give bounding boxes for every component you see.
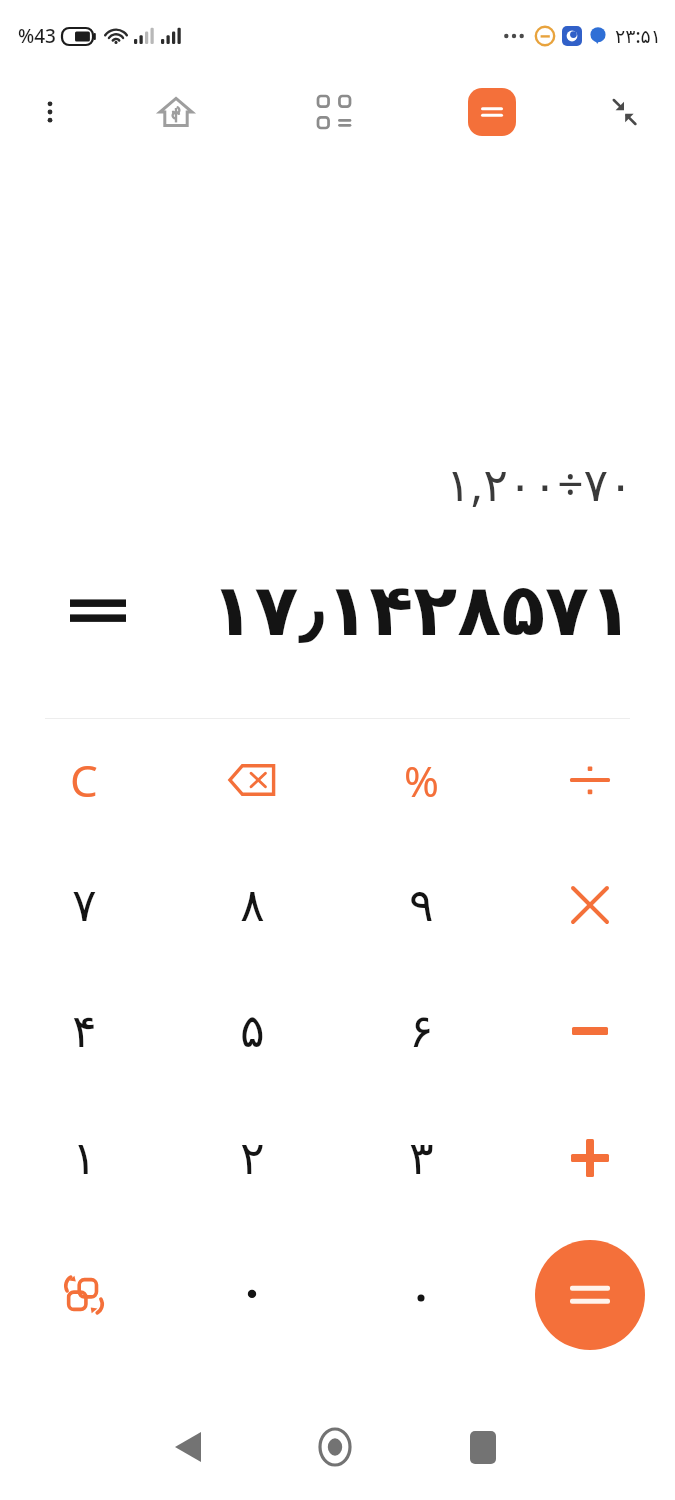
button[interactable]: Currency bbox=[148, 84, 204, 140]
staticText: ۱۷٫۱۴۲۸۵۷۱ bbox=[126, 568, 633, 652]
button[interactable]: Dot bbox=[361, 1239, 481, 1351]
button[interactable]: ۹ bbox=[361, 849, 481, 961]
button[interactable]: Back bbox=[148, 1407, 228, 1487]
button[interactable]: ۵ bbox=[192, 975, 312, 1087]
button[interactable]: ۴ bbox=[24, 975, 144, 1087]
button[interactable]: More options bbox=[22, 84, 78, 140]
button[interactable]: ۲ bbox=[192, 1102, 312, 1214]
button[interactable]: Decimal separator bbox=[192, 1239, 312, 1351]
staticText: ۹ bbox=[409, 878, 434, 932]
staticText: % bbox=[404, 752, 439, 809]
button[interactable]: Home bbox=[295, 1407, 375, 1487]
button[interactable]: Unit converter bbox=[306, 84, 362, 140]
staticText: %43 bbox=[18, 23, 56, 49]
button[interactable]: ۳ bbox=[361, 1102, 481, 1214]
button[interactable]: Calculator bbox=[468, 88, 516, 136]
button[interactable]: Clear bbox=[24, 724, 144, 836]
button[interactable]: Backspace bbox=[192, 724, 312, 836]
button[interactable]: ۸ bbox=[192, 849, 312, 961]
button[interactable]: Recent apps bbox=[443, 1407, 523, 1487]
button[interactable]: Divide bbox=[530, 724, 650, 836]
button[interactable]: Collapse bbox=[598, 86, 650, 138]
staticText: ۱ bbox=[72, 1131, 97, 1185]
staticText: ۲ bbox=[240, 1131, 265, 1185]
staticText: ۸ bbox=[240, 878, 265, 932]
staticText: C bbox=[70, 750, 98, 810]
staticText: ۴ bbox=[72, 1004, 97, 1058]
button[interactable]: ۱ bbox=[24, 1102, 144, 1214]
button[interactable]: ۶ bbox=[361, 975, 481, 1087]
staticText: ۱,۲۰۰÷۷۰ bbox=[0, 452, 633, 515]
button[interactable]: Multiply bbox=[530, 849, 650, 961]
button[interactable]: ۷ bbox=[24, 849, 144, 961]
button[interactable]: Percent bbox=[361, 724, 481, 836]
staticText: ۳ bbox=[409, 1131, 434, 1185]
button[interactable]: Minus bbox=[530, 975, 650, 1087]
staticText: ۲۳:۵۱ bbox=[615, 23, 661, 49]
button[interactable]: Equals bbox=[535, 1240, 645, 1350]
button[interactable]: Swap bbox=[24, 1239, 144, 1351]
staticText: ۷ bbox=[72, 878, 97, 932]
staticText: ۶ bbox=[409, 1004, 434, 1058]
button[interactable]: Plus bbox=[530, 1102, 650, 1214]
staticText: ۵ bbox=[240, 1004, 265, 1058]
